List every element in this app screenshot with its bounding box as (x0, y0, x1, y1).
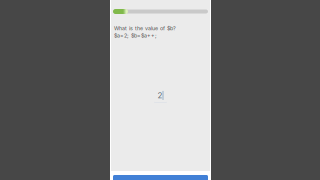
button[interactable]: Answer (152, 90, 168, 103)
button[interactable]: Submit (113, 175, 208, 180)
staticText: 2 (157, 91, 162, 100)
staticText: What is the value of $b? (114, 25, 176, 31)
staticText: $a=2; $b=$a++; (114, 32, 157, 39)
